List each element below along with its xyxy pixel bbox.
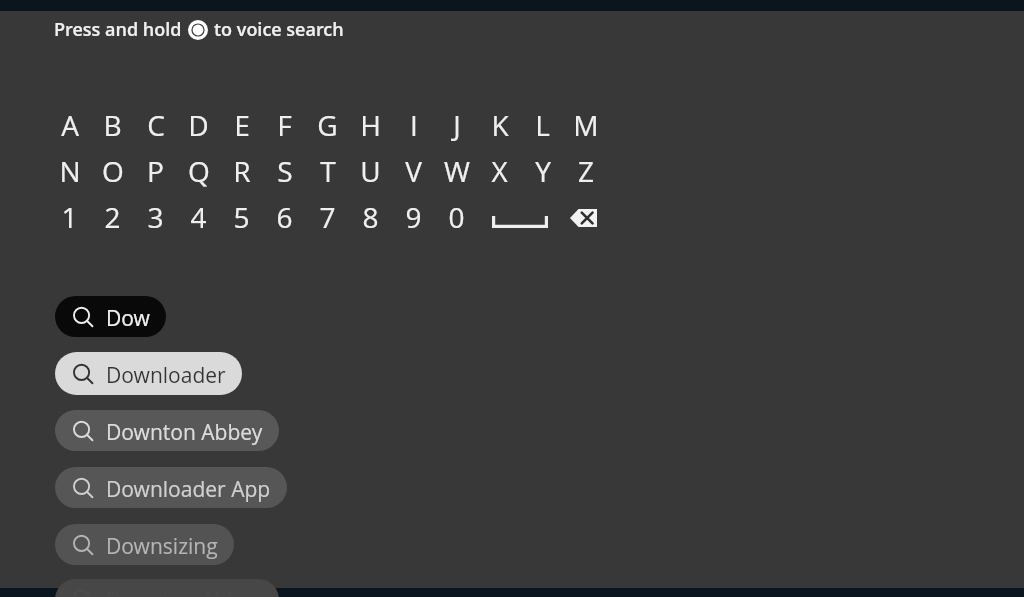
staticText: 2 [104, 198, 121, 236]
staticText: T [320, 152, 336, 190]
button[interactable]: J [435, 102, 478, 148]
staticText: Downsizing [106, 532, 218, 561]
staticText: G [317, 106, 338, 144]
staticText: 5 [233, 198, 250, 236]
button[interactable]: B [91, 102, 134, 148]
staticText: V [405, 152, 422, 190]
staticText: Q [188, 152, 210, 190]
staticText: Dow [106, 304, 150, 333]
button[interactable]: O [91, 148, 134, 194]
button[interactable]: M [564, 102, 607, 148]
button[interactable]: K [478, 102, 521, 148]
staticText: 1 [61, 198, 78, 236]
button[interactable]: Y [521, 148, 564, 194]
other: Voice search button [188, 20, 208, 40]
button[interactable]: X [478, 148, 521, 194]
staticText: Y [535, 152, 551, 190]
button[interactable]: Downsizing [55, 524, 234, 565]
button[interactable]: Space [492, 194, 548, 240]
staticText: F [277, 106, 292, 144]
button[interactable]: A [48, 102, 91, 148]
button[interactable]: Dow [55, 296, 166, 337]
staticText: Z [578, 152, 594, 190]
button[interactable]: 1 [48, 194, 91, 240]
button[interactable]: I [392, 102, 435, 148]
staticText: W [444, 152, 470, 190]
button[interactable]: F [263, 102, 306, 148]
staticText: D [188, 106, 209, 144]
button[interactable]: Downton Abbey [55, 579, 279, 597]
button[interactable]: 6 [263, 194, 306, 240]
staticText: 8 [362, 198, 379, 236]
staticText: R [233, 152, 251, 190]
button[interactable]: W [435, 148, 478, 194]
button[interactable]: 5 [220, 194, 263, 240]
button[interactable]: S [263, 148, 306, 194]
button[interactable]: E [220, 102, 263, 148]
button[interactable]: 9 [392, 194, 435, 240]
button[interactable]: D [177, 102, 220, 148]
staticText: 4 [190, 198, 207, 236]
button[interactable]: 7 [306, 194, 349, 240]
button[interactable]: 0 [435, 194, 478, 240]
button[interactable]: Z [564, 148, 607, 194]
staticText: X [491, 152, 508, 190]
staticText: P [147, 152, 164, 190]
staticText: E [234, 106, 250, 144]
button[interactable]: 4 [177, 194, 220, 240]
staticText: H [360, 106, 381, 144]
button[interactable]: Q [177, 148, 220, 194]
staticText: 0 [448, 198, 465, 236]
staticText: Downton Abbey [106, 418, 263, 447]
button[interactable]: R [220, 148, 263, 194]
button[interactable]: L [521, 102, 564, 148]
staticText: K [491, 106, 509, 144]
button[interactable]: U [349, 148, 392, 194]
staticText: S [277, 152, 293, 190]
button[interactable]: G [306, 102, 349, 148]
button[interactable]: V [392, 148, 435, 194]
button[interactable]: N [48, 148, 91, 194]
button[interactable]: 2 [91, 194, 134, 240]
button[interactable]: T [306, 148, 349, 194]
staticText: 9 [405, 198, 422, 236]
staticText: 7 [319, 198, 336, 236]
staticText: A [61, 106, 79, 144]
staticText: 3 [147, 198, 164, 236]
staticText: L [535, 106, 550, 144]
button[interactable]: Backspace [570, 194, 597, 240]
staticText: J [453, 106, 461, 144]
staticText: B [103, 106, 122, 144]
button[interactable]: H [349, 102, 392, 148]
staticText: 6 [276, 198, 293, 236]
button[interactable]: Downloader App [55, 467, 287, 508]
button[interactable]: Downton Abbey [55, 410, 279, 451]
staticText: C [147, 106, 165, 144]
button[interactable]: 8 [349, 194, 392, 240]
staticText: M [573, 106, 599, 144]
staticText: O [102, 152, 124, 190]
staticText: N [59, 152, 81, 190]
staticText: to voice search [214, 17, 344, 42]
staticText: Downloader [106, 361, 226, 390]
button[interactable]: C [134, 102, 177, 148]
staticText: U [360, 152, 381, 190]
button[interactable]: P [134, 148, 177, 194]
staticText: Downloader App [106, 475, 271, 504]
staticText: I [410, 106, 418, 144]
button[interactable]: 3 [134, 194, 177, 240]
staticText: Press and hold [54, 17, 182, 42]
button[interactable]: Downloader [55, 352, 242, 395]
